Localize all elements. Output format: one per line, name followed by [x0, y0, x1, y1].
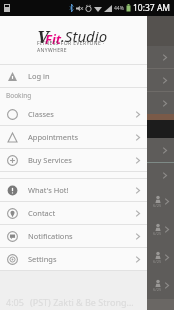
staticText: (PST) Zakti & Be Strong…	[30, 296, 134, 308]
staticText: What's Hot!	[28, 185, 135, 195]
staticText: 6/25	[153, 259, 162, 264]
staticText: Settings	[28, 254, 135, 264]
staticText: Fit	[45, 30, 62, 48]
staticText: 6/25	[153, 287, 162, 292]
staticText: 10:37 AM	[133, 2, 171, 14]
staticText: Notifications	[28, 231, 135, 241]
button[interactable]: Log in	[0, 65, 147, 87]
staticText: 44%	[114, 5, 124, 12]
staticText: V	[37, 25, 49, 48]
staticText: 6/25	[153, 203, 162, 208]
button[interactable]: Notifications	[0, 225, 147, 247]
staticText: FITNESS FOR EVERYONE · ANYWHERE	[37, 40, 135, 54]
button[interactable]: Buy Services	[0, 149, 147, 171]
button[interactable]: What's Hot!	[0, 179, 147, 201]
staticText: 6/25	[153, 231, 162, 236]
button[interactable]: Appointments	[0, 126, 147, 148]
staticText: Buy Services	[28, 155, 135, 165]
staticText: Contact	[28, 208, 135, 218]
button[interactable]: Classes	[0, 103, 147, 125]
staticText: Appointments	[28, 132, 135, 142]
staticText: Classes	[28, 109, 135, 119]
button[interactable]: Settings	[0, 248, 147, 270]
staticText: Booking	[6, 91, 32, 100]
staticText: 4:05	[6, 296, 24, 308]
staticText: .Studio	[61, 26, 108, 46]
staticText: Log in	[28, 71, 141, 81]
button[interactable]: Contact	[0, 202, 147, 224]
